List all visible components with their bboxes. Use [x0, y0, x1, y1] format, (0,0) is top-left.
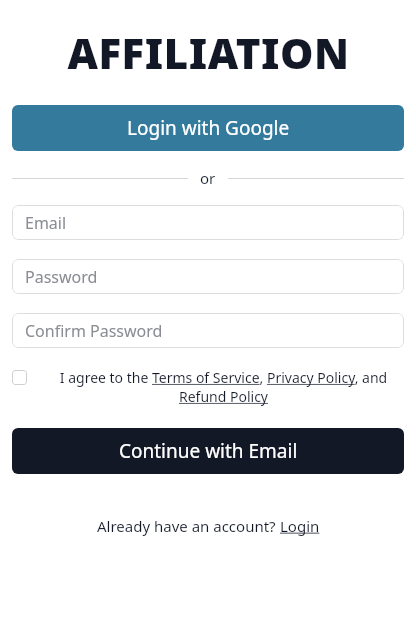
button[interactable]: Confirm Password	[12, 313, 404, 348]
button[interactable]: Login	[280, 516, 320, 536]
staticText: Continue with Email	[119, 438, 298, 464]
staticText: or	[200, 168, 216, 188]
staticText: Login	[280, 516, 320, 536]
staticText: Already have an account?	[97, 516, 280, 536]
staticText: Password	[25, 266, 98, 288]
button[interactable]: Password	[12, 259, 404, 294]
button[interactable]: Agree to terms checkbox	[12, 370, 27, 385]
staticText: Confirm Password	[25, 320, 163, 342]
staticText: I agree to the Terms of Service, Privacy…	[51, 368, 396, 406]
button[interactable]: Email	[12, 205, 404, 240]
button[interactable]: Continue with Email	[12, 428, 404, 474]
staticText: AFFILIATION	[67, 24, 350, 81]
button[interactable]: Login with Google	[12, 105, 404, 151]
staticText: Login with Google	[127, 115, 290, 141]
staticText: Email	[25, 212, 67, 234]
